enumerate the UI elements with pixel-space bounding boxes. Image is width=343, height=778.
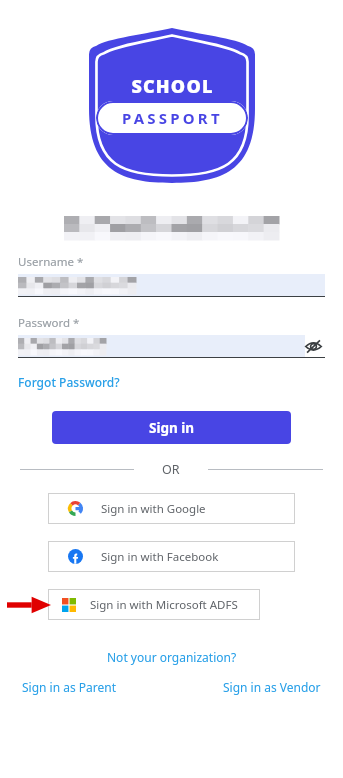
button[interactable]: Show password <box>301 335 325 357</box>
staticText: Password * <box>18 315 80 331</box>
staticText: Sign in with Facebook <box>101 549 219 565</box>
staticText: Forgot Password? <box>18 374 120 390</box>
button[interactable]: Forgot Password? <box>18 372 120 392</box>
staticText: Not your organization? <box>107 649 237 665</box>
button[interactable]: Sign in with Google <box>48 493 295 524</box>
button[interactable] <box>18 274 325 296</box>
staticText: Sign in as Parent <box>22 679 117 695</box>
staticText: Sign in with Google <box>101 501 206 517</box>
staticText: SCHOOL <box>131 74 214 99</box>
button[interactable]: Sign in as Parent <box>16 677 123 697</box>
staticText: OR <box>162 461 180 478</box>
staticText: Username * <box>18 254 84 270</box>
button[interactable]: Sign in <box>52 411 291 444</box>
button[interactable] <box>18 335 305 357</box>
button[interactable]: Sign in with Facebook <box>48 541 295 572</box>
button[interactable]: Not your organization? <box>103 647 241 667</box>
staticText: Sign in with Microsoft ADFS <box>90 597 238 613</box>
button[interactable]: Sign in as Vendor <box>217 677 327 697</box>
staticText: PASSPORT <box>122 108 223 128</box>
staticText: Sign in <box>149 419 195 437</box>
staticText: Sign in as Vendor <box>223 679 321 695</box>
button[interactable]: Sign in with Microsoft ADFS <box>48 589 260 620</box>
